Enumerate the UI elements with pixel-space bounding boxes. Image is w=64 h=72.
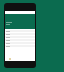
button[interactable] <box>5 14 35 29</box>
button[interactable] <box>5 36 35 38</box>
button[interactable] <box>5 30 35 32</box>
button[interactable] <box>5 33 35 35</box>
button[interactable] <box>5 39 35 41</box>
button[interactable] <box>5 45 35 47</box>
button[interactable] <box>5 42 35 44</box>
